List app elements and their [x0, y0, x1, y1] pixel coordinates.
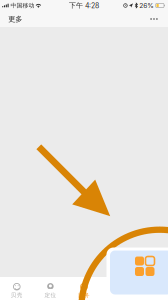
staticText: 更多 [145, 291, 157, 299]
staticText: 中国移动 [10, 2, 34, 9]
button[interactable]: 定位 [34, 275, 67, 300]
staticText: 下午 4:28 [69, 1, 99, 10]
staticText: 服务 [78, 291, 90, 299]
button[interactable]: 贝壳 [0, 275, 34, 300]
button[interactable]: 更多 [134, 275, 168, 300]
staticText: 消息 [112, 291, 124, 299]
button[interactable]: 服务 [67, 275, 101, 300]
button[interactable]: More options [143, 12, 165, 26]
button[interactable]: 消息 [101, 275, 134, 300]
staticText: 26% [139, 1, 154, 10]
staticText: 贝壳 [11, 291, 23, 299]
staticText: 定位 [44, 291, 56, 299]
staticText: 更多 [8, 14, 22, 24]
